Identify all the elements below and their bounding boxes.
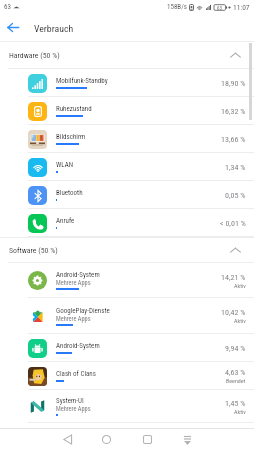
button[interactable]: Mobilfunk-Standby: [0, 69, 254, 97]
staticText: Aktiv: [234, 282, 246, 289]
button[interactable]: Zurück: [0, 14, 26, 41]
button[interactable]: Android-System: [0, 334, 254, 362]
staticText: Ruhezustand: [56, 105, 92, 113]
staticText: 11:07: [233, 3, 250, 12]
staticText: < 0,01 %: [220, 219, 246, 228]
button[interactable]: Bildschirm: [0, 125, 254, 153]
button[interactable]: Clash of Clans: [0, 362, 254, 390]
staticText: 0,05 %: [225, 191, 246, 200]
staticText: 63: [4, 3, 11, 11]
staticText: Hardware (50 %): [9, 51, 60, 60]
button[interactable]: Bluetooth: [0, 181, 254, 209]
staticText: Mehrere Apps: [56, 315, 91, 322]
staticText: Anrufe: [56, 217, 75, 225]
staticText: Android-System: [56, 271, 100, 279]
staticText: 13,66 %: [221, 135, 246, 144]
staticText: 63: [217, 5, 222, 11]
staticText: 9,94 %: [225, 344, 246, 353]
button[interactable]: Übersicht: [135, 429, 159, 450]
staticText: Aktiv: [234, 317, 246, 324]
staticText: 1,34 %: [225, 163, 246, 172]
staticText: Mehrere Apps: [56, 279, 91, 286]
staticText: Beendet: [226, 377, 246, 384]
staticText: 16,32 %: [221, 107, 246, 116]
staticText: 1,45 %: [225, 399, 246, 408]
staticText: Clash of Clans: [56, 370, 96, 378]
button[interactable]: Android-System: [0, 263, 254, 298]
staticText: Aktiv: [234, 408, 246, 415]
staticText: GooglePlay-Dienste: [56, 307, 110, 315]
button[interactable]: GooglePlay-Dienste: [0, 298, 254, 334]
staticText: 14,21 %: [221, 273, 246, 282]
staticText: Android-System: [56, 342, 100, 350]
button[interactable]: Zurück: [55, 429, 79, 450]
button[interactable]: Ruhezustand: [0, 97, 254, 125]
button[interactable]: Software (50 %): [0, 237, 254, 263]
staticText: Software (50 %): [9, 246, 58, 255]
staticText: Bluetooth: [56, 189, 83, 197]
staticText: Mehrere Apps: [56, 405, 91, 412]
staticText: 158B/s: [167, 3, 187, 11]
staticText: 4,63 %: [225, 368, 246, 377]
staticText: 18,90 %: [221, 79, 246, 88]
button[interactable]: Hardware (50 %): [0, 41, 254, 69]
staticText: WLAN: [56, 161, 74, 169]
staticText: System-UI: [56, 397, 84, 405]
button[interactable]: Nach unten: [175, 429, 199, 450]
staticText: 10,42 %: [221, 308, 246, 317]
button[interactable]: System-UI: [0, 390, 254, 423]
button[interactable]: Anrufe: [0, 209, 254, 237]
button[interactable]: Startseite: [94, 429, 118, 450]
staticText: Bildschirm: [56, 133, 86, 141]
staticText: Mobilfunk-Standby: [56, 77, 108, 85]
button[interactable]: WLAN: [0, 153, 254, 181]
staticText: Verbrauch: [34, 23, 74, 34]
